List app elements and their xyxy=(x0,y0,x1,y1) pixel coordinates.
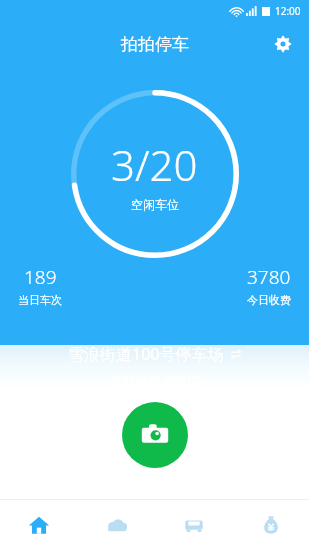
staticText: 拍拍停车 xyxy=(121,34,189,55)
staticText: 3/20 xyxy=(111,136,198,193)
staticText: 12:00 xyxy=(275,4,301,18)
button[interactable]: Home xyxy=(0,500,78,550)
staticText: 3780 xyxy=(247,264,291,290)
staticText: 当日车次 xyxy=(18,293,62,307)
staticText: 今日收费 xyxy=(247,293,291,307)
staticText: 空闲车位 xyxy=(131,197,179,212)
button[interactable]: Vehicles xyxy=(155,500,232,550)
button[interactable]: Settings xyxy=(267,28,299,60)
button[interactable]: Camera capture xyxy=(122,402,188,468)
staticText: 雪浪街道100号停车场 xyxy=(68,343,224,365)
button[interactable]: Upload xyxy=(78,500,155,550)
staticText: 189 xyxy=(24,264,57,290)
button[interactable]: Earnings xyxy=(232,500,309,550)
button[interactable]: 雪浪街道100号停车场 xyxy=(0,343,309,365)
